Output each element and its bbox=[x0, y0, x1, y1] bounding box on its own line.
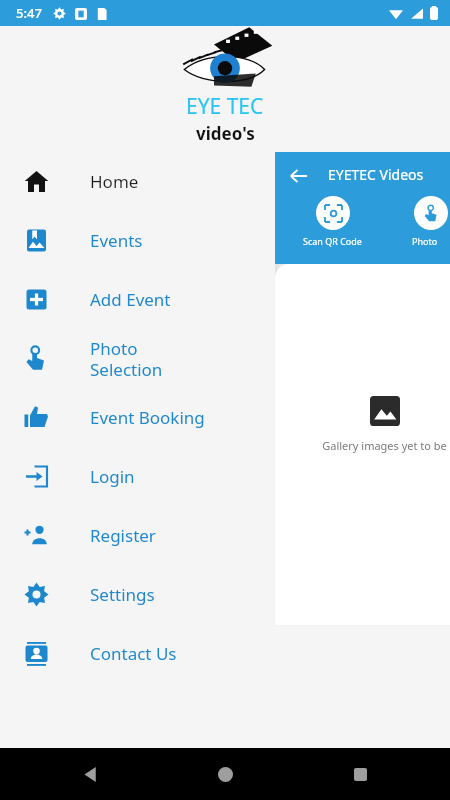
button[interactable]: Scan QR Code bbox=[303, 196, 362, 247]
staticText: 5:47 bbox=[16, 4, 42, 22]
staticText: Contact Us bbox=[90, 642, 177, 665]
button[interactable]: Add Event bbox=[0, 270, 450, 329]
staticText: Register bbox=[90, 524, 156, 547]
staticText: Events bbox=[90, 229, 143, 252]
button[interactable]: Event Booking bbox=[0, 388, 450, 447]
staticText: EYETEC Videos bbox=[328, 165, 424, 184]
button[interactable]: Back bbox=[283, 160, 315, 192]
button[interactable]: Photo Selection bbox=[412, 196, 450, 247]
staticText: Home bbox=[90, 170, 139, 193]
staticText: Add Event bbox=[90, 288, 171, 311]
button[interactable]: Login bbox=[0, 447, 450, 506]
staticText: Settings bbox=[90, 583, 155, 606]
button[interactable]: Home bbox=[205, 754, 245, 794]
button[interactable]: Back bbox=[70, 754, 110, 794]
staticText: Login bbox=[90, 465, 135, 488]
staticText: Event Booking bbox=[90, 406, 205, 429]
staticText: Photo Selection bbox=[412, 235, 450, 247]
button[interactable]: Contact Us bbox=[0, 624, 450, 683]
button[interactable]: Photo Selection bbox=[0, 329, 450, 388]
button[interactable]: Register bbox=[0, 506, 450, 565]
staticText: Gallery images yet to be uploaded bbox=[297, 438, 450, 453]
staticText: EYE TEC bbox=[186, 92, 264, 121]
button[interactable]: Events bbox=[0, 211, 450, 270]
button[interactable]: Settings bbox=[0, 565, 450, 624]
button[interactable]: Home bbox=[0, 152, 450, 211]
staticText: Scan QR Code bbox=[303, 235, 362, 247]
button[interactable]: Recent apps bbox=[340, 754, 380, 794]
staticText: Photo Selection bbox=[90, 337, 163, 381]
staticText: video's bbox=[196, 122, 255, 144]
